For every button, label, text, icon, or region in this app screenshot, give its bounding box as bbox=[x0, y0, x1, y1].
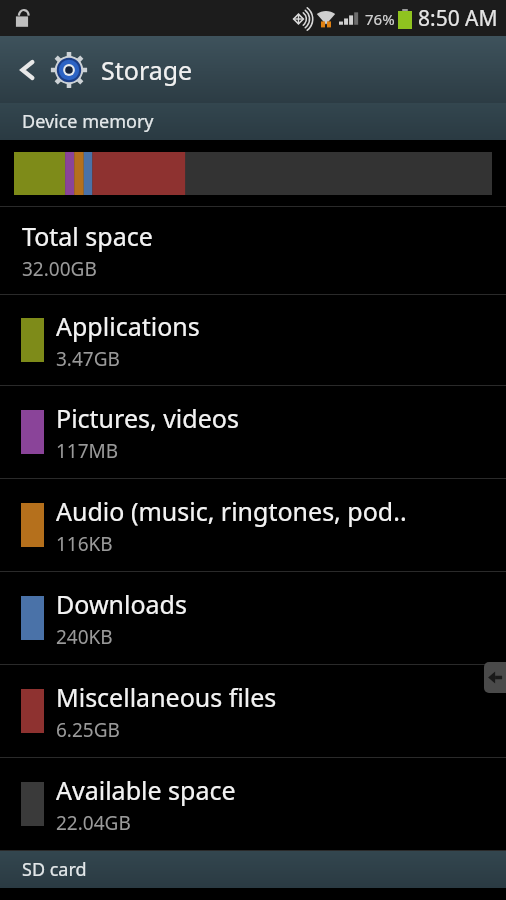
button[interactable]: Available space bbox=[0, 758, 506, 850]
button[interactable]: Miscellaneous files bbox=[0, 665, 506, 757]
other: Back bbox=[10, 52, 46, 88]
staticText: 22.04GB bbox=[56, 810, 131, 836]
button[interactable]: Open multi window tray bbox=[484, 662, 506, 693]
button[interactable]: Audio (music, ringtones, pod.. bbox=[0, 479, 506, 571]
staticText: Audio (music, ringtones, pod.. bbox=[56, 494, 407, 528]
staticText: Miscellaneous files bbox=[56, 680, 277, 714]
button[interactable]: Downloads bbox=[0, 572, 506, 664]
staticText: Applications bbox=[56, 309, 200, 343]
staticText: 76% bbox=[365, 9, 395, 29]
staticText: Pictures, videos bbox=[56, 401, 239, 435]
staticText: Available space bbox=[56, 773, 236, 807]
button[interactable]: Total space bbox=[0, 207, 506, 294]
staticText: Device memory bbox=[22, 109, 154, 134]
staticText: Total space bbox=[22, 219, 153, 253]
staticText: SD card bbox=[22, 857, 87, 882]
staticText: 117MB bbox=[56, 438, 119, 464]
staticText: Storage bbox=[101, 53, 193, 87]
button[interactable]: Pictures, videos bbox=[0, 386, 506, 478]
staticText: 3.47GB bbox=[56, 346, 120, 372]
staticText: 6.25GB bbox=[56, 717, 120, 743]
staticText: 8:50 AM bbox=[418, 4, 498, 33]
staticText: Downloads bbox=[56, 587, 187, 621]
staticText: 32.00GB bbox=[22, 256, 97, 282]
button[interactable]: Back bbox=[0, 36, 506, 103]
staticText: 240KB bbox=[56, 624, 113, 650]
staticText: 116KB bbox=[56, 531, 113, 557]
button[interactable]: Applications bbox=[0, 295, 506, 385]
